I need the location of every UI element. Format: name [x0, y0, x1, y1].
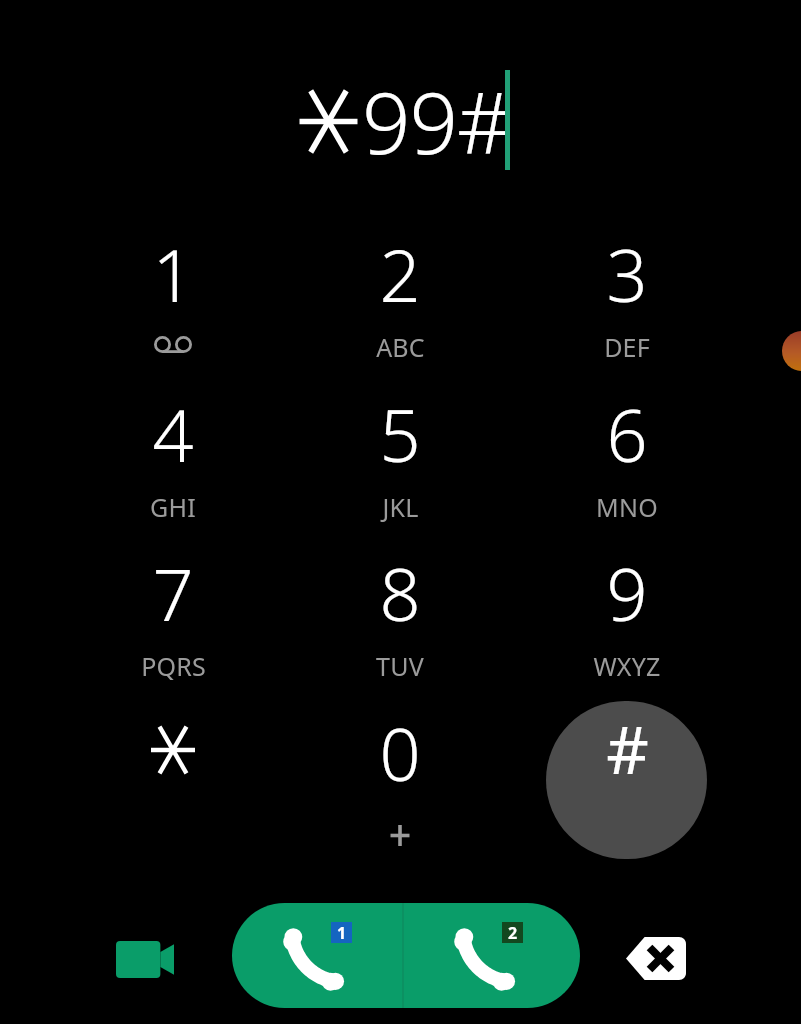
button[interactable]: Dial 8: [287, 530, 514, 690]
staticText: ABC: [376, 330, 425, 364]
staticText: #: [606, 703, 649, 793]
button[interactable]: Dial 0: [287, 690, 514, 850]
staticText: 9: [606, 544, 648, 642]
button[interactable]: Video call: [85, 899, 205, 1019]
staticText: 7: [152, 544, 194, 642]
staticText: MNO: [596, 490, 658, 524]
staticText: WXYZ: [593, 649, 661, 683]
staticText: PQRS: [141, 649, 206, 683]
button[interactable]: Floating bubble: [782, 331, 801, 371]
staticText: 5: [379, 385, 421, 483]
staticText: 1: [337, 922, 347, 943]
staticText: 2: [379, 225, 421, 323]
staticText: TUV: [376, 649, 424, 683]
button[interactable]: Dialled number *99#: [0, 40, 801, 190]
button[interactable]: Dial *: [60, 690, 287, 850]
staticText: 99#: [362, 63, 511, 179]
button[interactable]: Dial #: [514, 690, 741, 850]
staticText: 6: [606, 385, 648, 483]
button[interactable]: Dial 7: [60, 530, 287, 690]
button[interactable]: Dial 4: [60, 371, 287, 531]
staticText: 0: [379, 704, 421, 802]
staticText: 1: [152, 225, 194, 323]
staticText: DEF: [604, 330, 650, 364]
button[interactable]: Backspace: [596, 898, 716, 1018]
staticText: GHI: [150, 490, 196, 524]
button[interactable]: Dial 3: [514, 211, 741, 371]
button[interactable]: Call with SIM 1: [232, 903, 402, 1008]
staticText: JKL: [382, 490, 419, 524]
staticText: 2: [508, 922, 518, 943]
button[interactable]: Dial 5: [287, 371, 514, 531]
button[interactable]: Call with SIM 2: [404, 903, 580, 1008]
button[interactable]: Dial 6: [514, 371, 741, 531]
button[interactable]: Dial 1: [60, 211, 287, 371]
staticText: 3: [606, 225, 648, 323]
staticText: 8: [379, 544, 421, 642]
button[interactable]: Dial 2: [287, 211, 514, 371]
staticText: 4: [152, 385, 194, 483]
button[interactable]: Dial 9: [514, 530, 741, 690]
